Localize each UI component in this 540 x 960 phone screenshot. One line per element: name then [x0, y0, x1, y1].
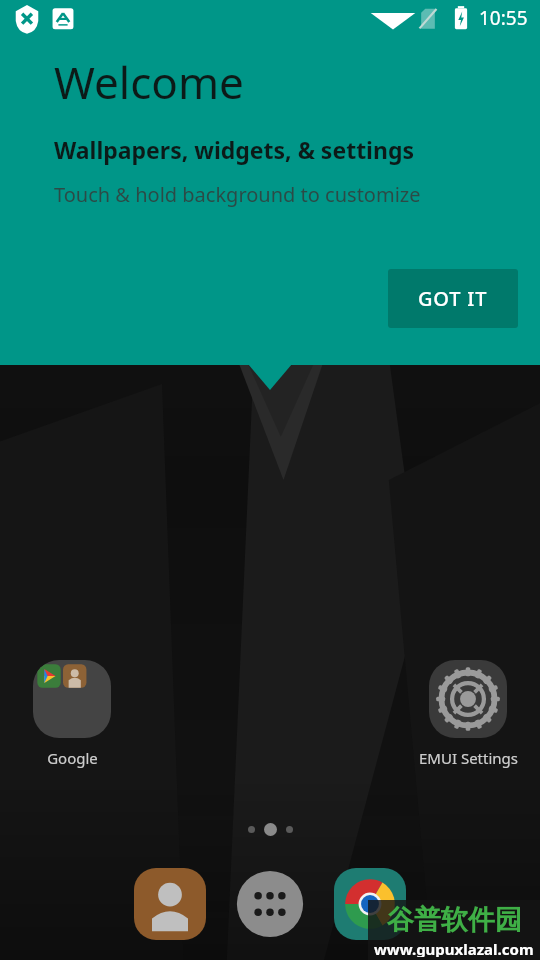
staticText: EMUI Settings [419, 748, 518, 768]
button[interactable]: All apps [234, 868, 306, 940]
staticText: 谷普软件园 [387, 903, 522, 937]
button[interactable]: Chrome [334, 868, 406, 940]
button[interactable]: Google [18, 660, 126, 768]
staticText: www.gupuxlazal.com [374, 939, 534, 957]
staticText: 10:55 [479, 5, 528, 31]
staticText: Wallpapers, widgets, & settings [54, 134, 415, 165]
button[interactable]: EMUI Settings [414, 660, 522, 768]
button[interactable]: GOT IT [388, 269, 518, 328]
staticText: GOT IT [418, 285, 488, 312]
staticText: Welcome [54, 52, 244, 112]
button[interactable]: Contacts [134, 868, 206, 940]
staticText: Google [47, 748, 98, 768]
staticText: Touch & hold background to customize [54, 181, 421, 208]
